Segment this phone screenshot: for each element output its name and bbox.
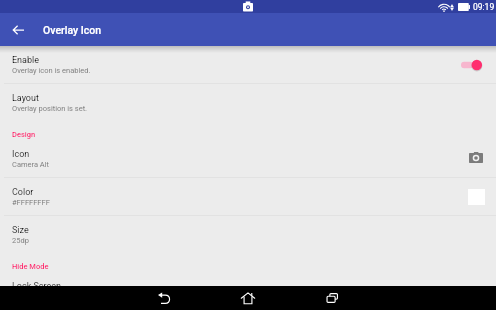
staticText: Lock Screen <box>12 281 62 286</box>
button[interactable]: Layout <box>0 84 496 121</box>
button[interactable]: Navigate up <box>0 13 37 46</box>
staticText: Camera Alt <box>12 160 50 169</box>
button[interactable]: Color <box>0 178 496 215</box>
button[interactable]: Home <box>230 286 266 310</box>
staticText: Hide Mode <box>12 262 49 271</box>
staticText: 25dp <box>12 236 29 245</box>
staticText: Overlay Icon <box>43 24 101 36</box>
button[interactable]: Enable overlay icon <box>461 58 485 72</box>
staticText: Icon <box>12 149 30 160</box>
staticText: Size <box>12 225 29 236</box>
button[interactable]: Enable <box>0 46 496 83</box>
button[interactable]: Lock Screen <box>0 272 496 286</box>
staticText: Overlay icon is enabled. <box>12 66 91 75</box>
staticText: Layout <box>12 93 39 104</box>
staticText: Overlay position is set. <box>12 104 88 113</box>
staticText: 09:19 <box>473 2 495 12</box>
button[interactable]: Back <box>146 286 182 310</box>
staticText: Design <box>12 130 36 139</box>
staticText: Enable <box>12 55 39 66</box>
button[interactable]: Icon <box>0 140 496 177</box>
staticText: #FFFFFFFF <box>12 198 50 207</box>
button[interactable]: Recent apps <box>314 286 350 310</box>
button[interactable]: Size <box>0 216 496 253</box>
staticText: Color <box>12 187 34 198</box>
button[interactable]: Choose icon <box>468 152 483 166</box>
